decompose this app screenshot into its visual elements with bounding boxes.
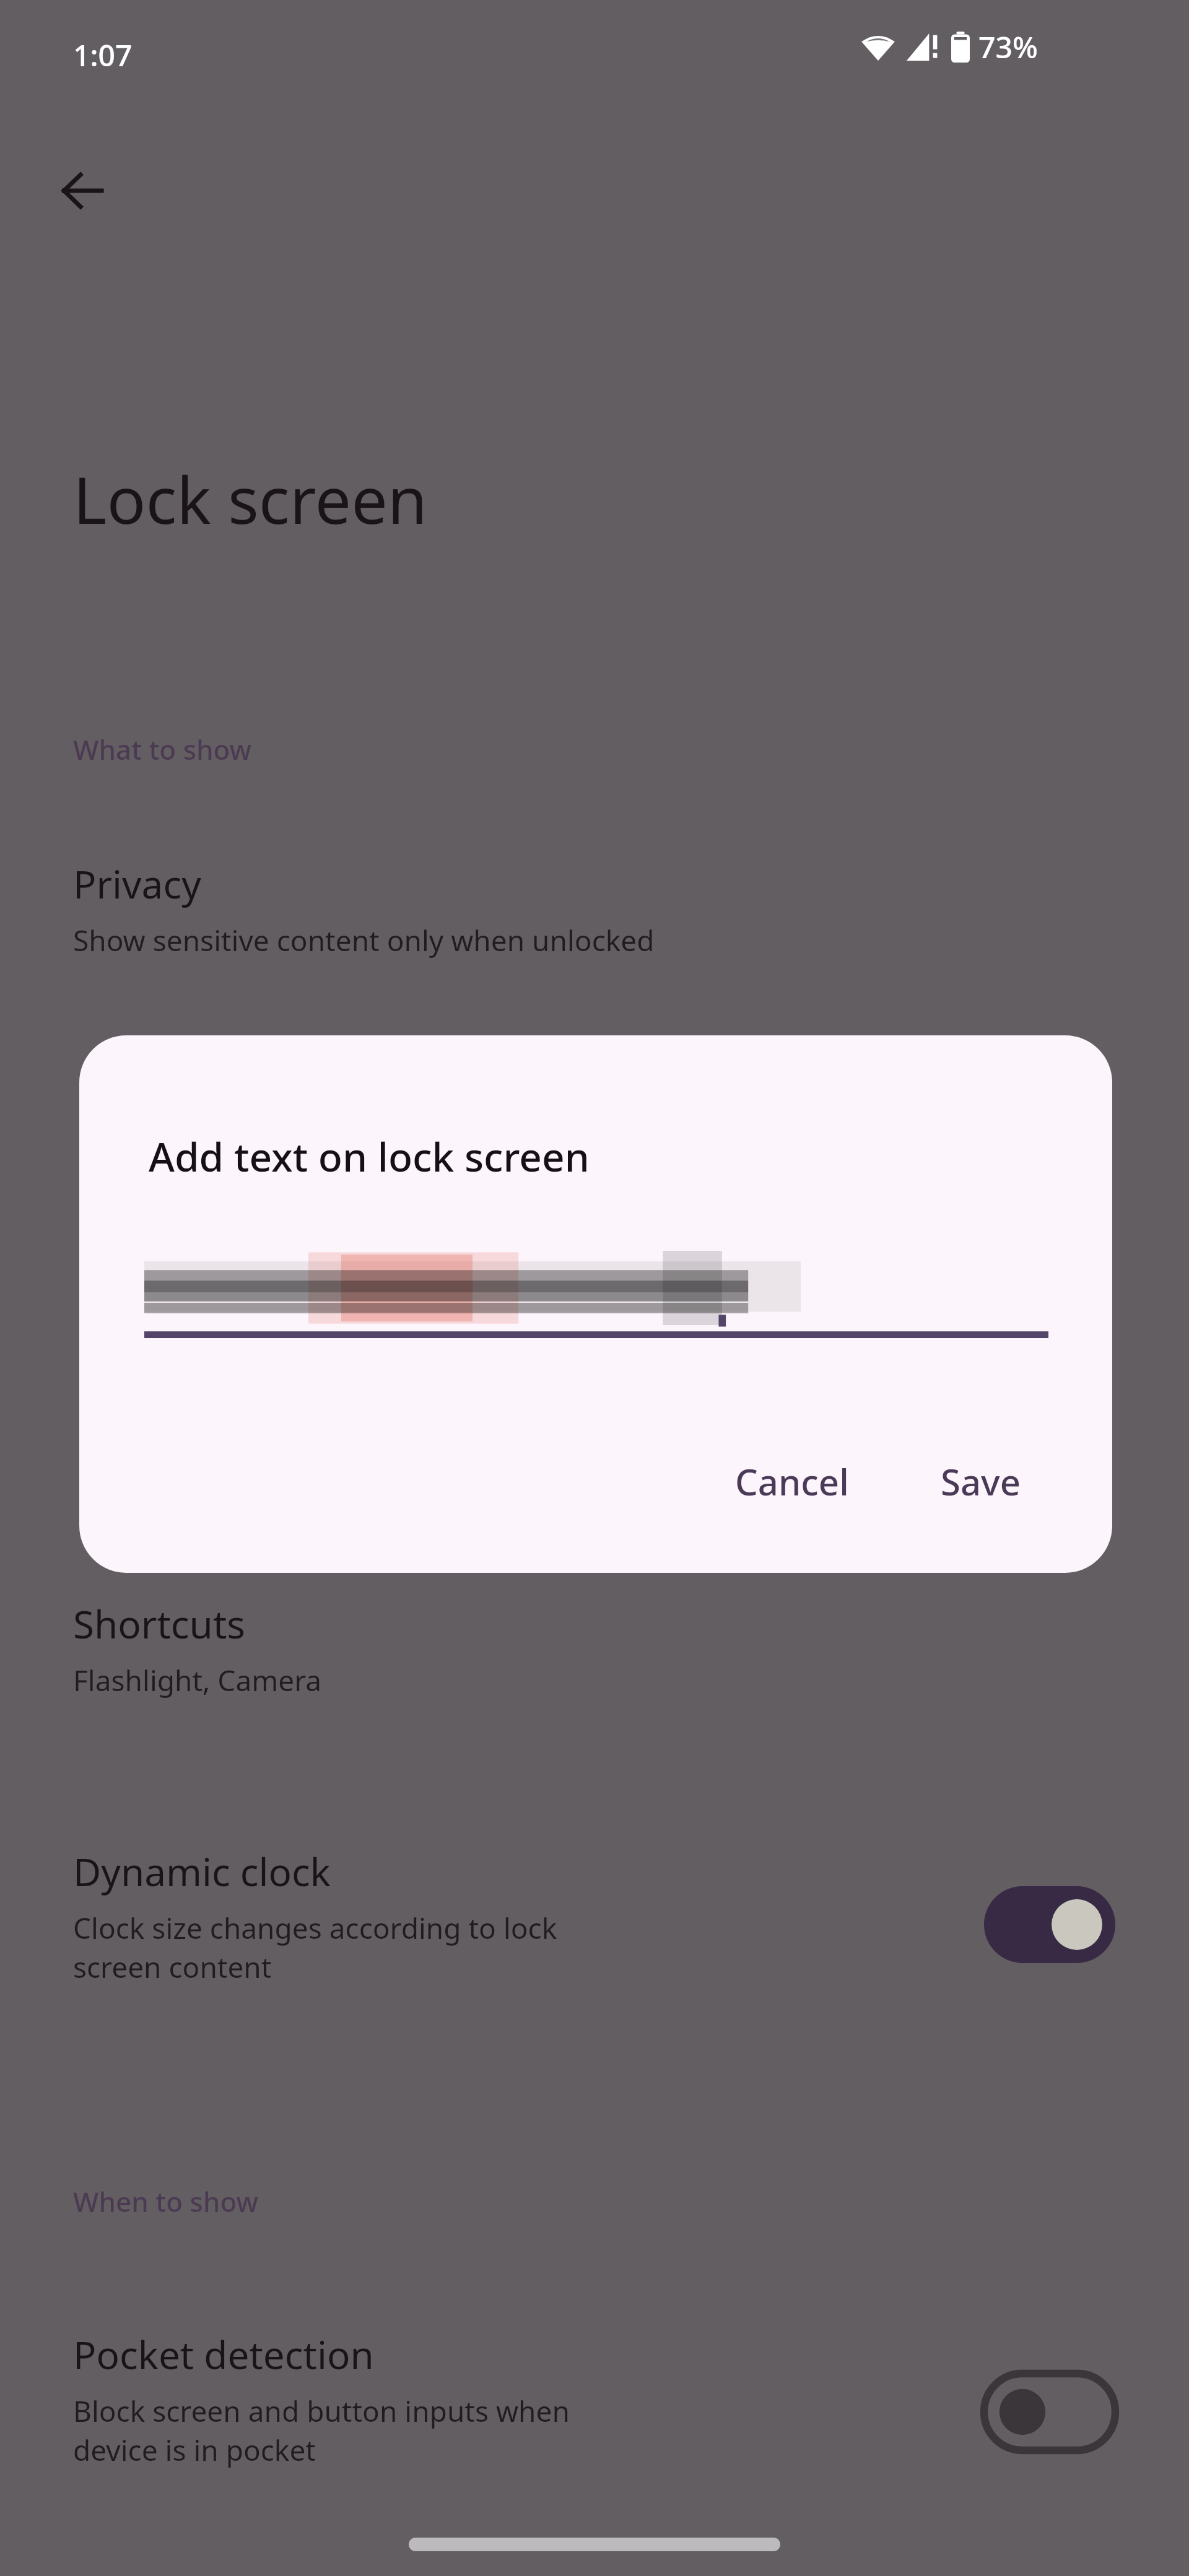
button[interactable]: Shortcuts bbox=[0, 1598, 1189, 1740]
staticText: Lock screen bbox=[73, 455, 428, 543]
staticText: Clock size changes according to lock scr… bbox=[73, 1908, 557, 1986]
staticText: What to show bbox=[73, 731, 252, 768]
button[interactable]: Cancel bbox=[716, 1445, 868, 1518]
staticText: Show sensitive content only when unlocke… bbox=[73, 921, 655, 960]
staticText: Flashlight, Camera bbox=[73, 1661, 322, 1700]
staticText: Pocket detection bbox=[73, 2328, 374, 2380]
staticText: 1:07 bbox=[73, 35, 133, 75]
staticText: When to show bbox=[73, 2183, 258, 2220]
button[interactable]: Back bbox=[37, 146, 128, 236]
staticText: 73% bbox=[978, 27, 1038, 67]
button[interactable]: Dynamic clock bbox=[982, 1884, 1118, 1965]
button[interactable]: Dynamic clock bbox=[0, 1845, 1189, 2043]
button[interactable]: Pocket detection bbox=[982, 2372, 1118, 2452]
staticText: Privacy bbox=[73, 858, 201, 910]
staticText: Save bbox=[941, 1457, 1021, 1506]
button[interactable]: Save bbox=[922, 1445, 1039, 1518]
staticText: Dynamic clock bbox=[73, 1845, 331, 1897]
staticText: Add text on lock screen bbox=[149, 1129, 590, 1183]
button[interactable]: Pocket detection bbox=[0, 2328, 1189, 2526]
button[interactable]: Privacy bbox=[0, 858, 1189, 1000]
staticText: Cancel bbox=[735, 1457, 849, 1506]
staticText: Shortcuts bbox=[73, 1598, 246, 1650]
staticText: Block screen and button inputs when devi… bbox=[73, 2391, 570, 2469]
